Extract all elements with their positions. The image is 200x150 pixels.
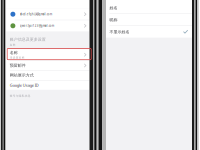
staticText: 账户信息及更多设置 [10,37,46,42]
staticText: abcd.efghijk@gmail.com [20,12,52,16]
staticText: qwer.tyui123@gmail.com [20,24,54,27]
button[interactable]: qwer.tyui123@gmail.com [6,20,89,31]
button[interactable]: 不显示姓名 [106,26,192,38]
staticText: 网站展示方式 [10,73,34,78]
staticText: Google Usage ID [10,82,39,88]
button[interactable]: 名称 [6,49,89,60]
staticText: 名称 [10,50,18,55]
staticText: 昵称 [109,17,117,22]
button[interactable]: Google Usage ID [6,80,89,90]
staticText: 不显示姓名 [109,29,129,34]
staticText: 姓名 [109,5,117,10]
button[interactable]: 姓名 [106,2,192,14]
staticText: 未设置名称 [10,56,25,59]
button[interactable]: 昵称 [106,14,192,26]
button[interactable]: abcd.efghijk@gmail.com [6,9,89,20]
button[interactable]: 预留邮件 [6,61,89,70]
button[interactable]: 网站展示方式 [6,71,89,80]
staticText: 名称 [10,43,16,46]
staticText: 账号与隐私信息 [10,94,31,98]
staticText: 预留邮件 [10,63,26,68]
